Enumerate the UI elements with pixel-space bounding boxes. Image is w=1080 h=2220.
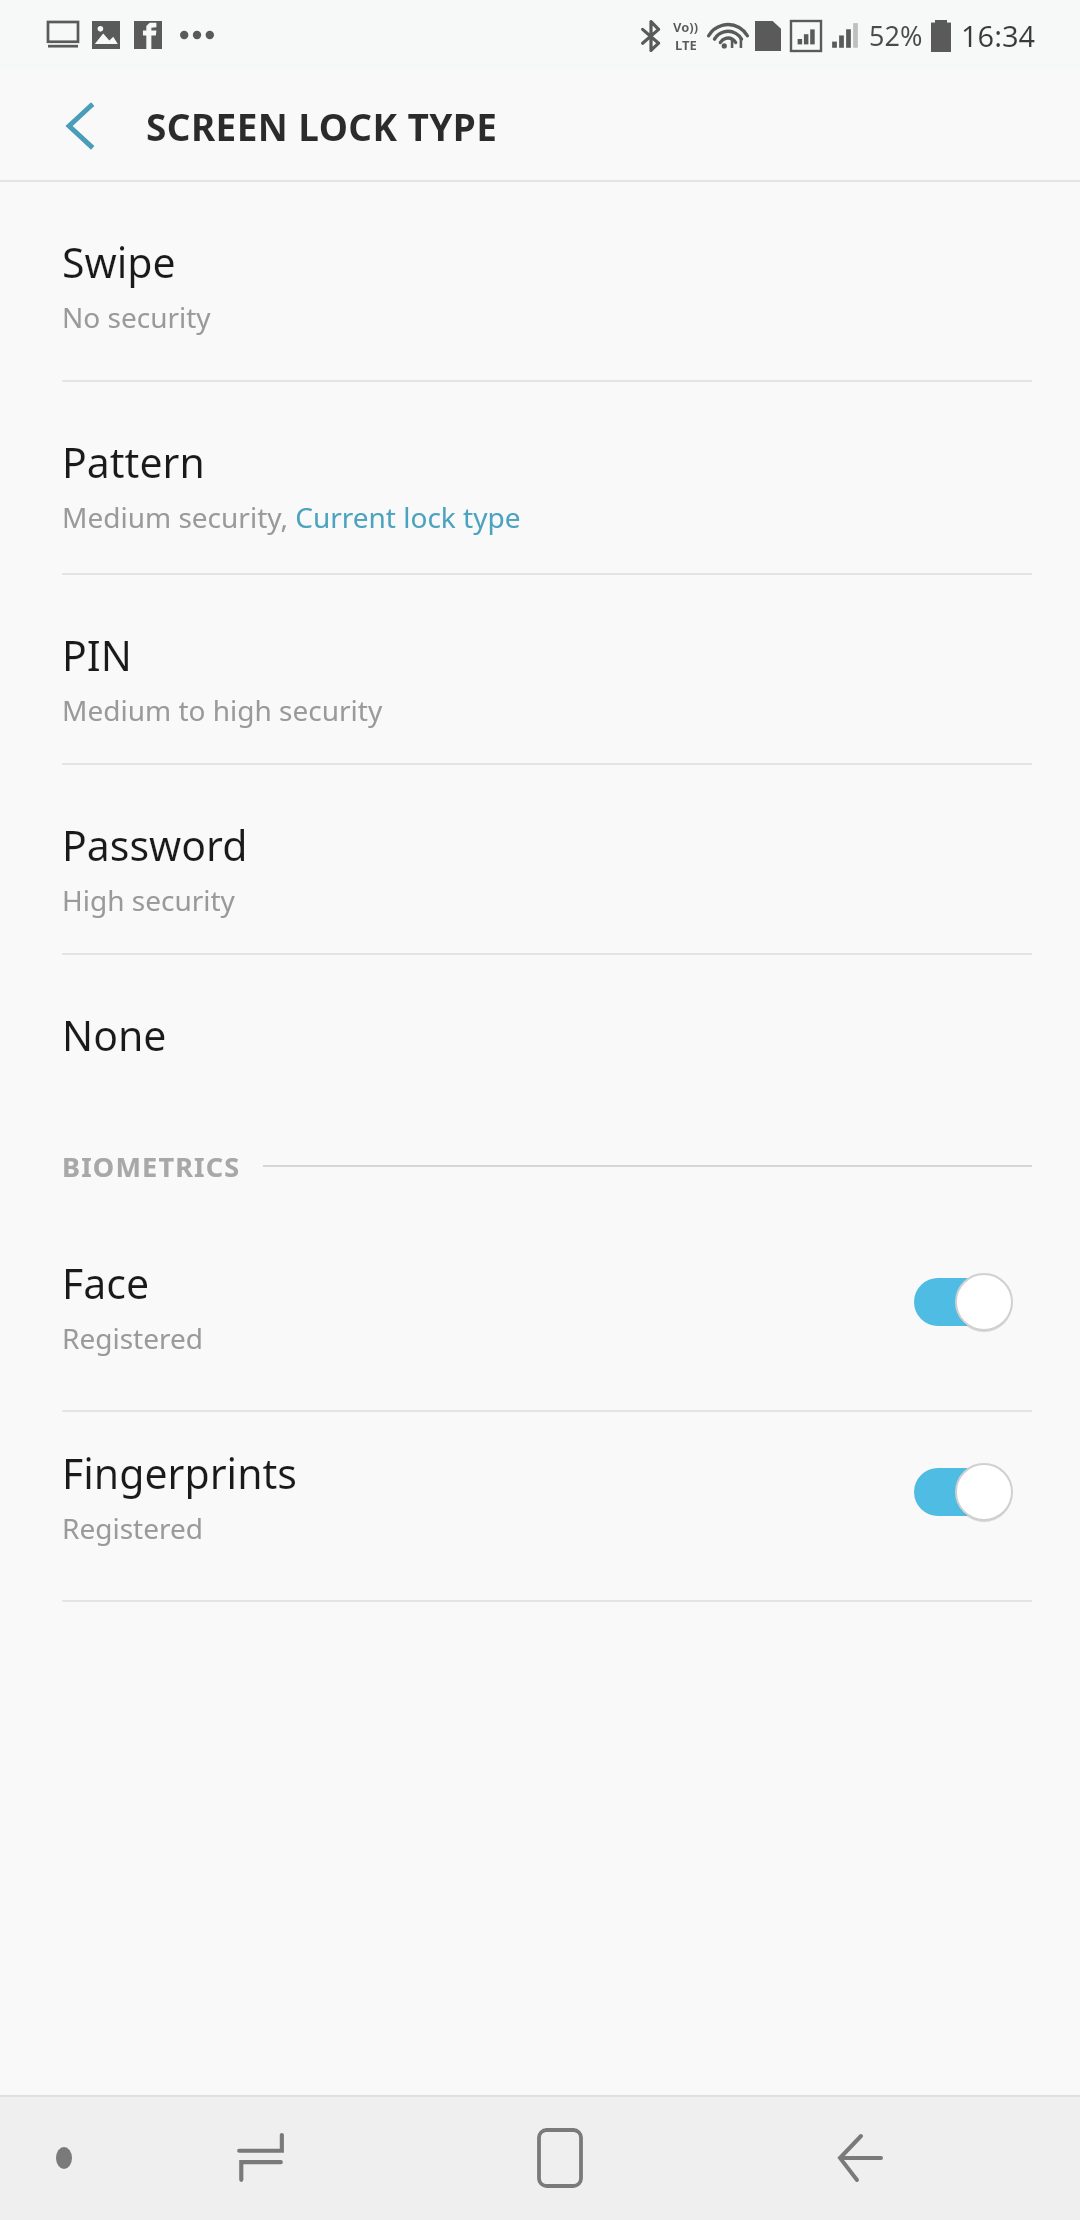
staticText: Registered <box>62 1319 203 1357</box>
staticText: Password <box>62 817 248 873</box>
button[interactable]: Back <box>710 2095 1010 2220</box>
staticText: Face <box>62 1255 150 1311</box>
staticText: No security <box>62 298 211 336</box>
staticText: 52% <box>869 17 923 54</box>
button[interactable]: Recents <box>110 2095 410 2220</box>
button[interactable]: Fingerprints toggle, on <box>914 1464 1012 1520</box>
staticText: BIOMETRICS <box>62 1148 241 1185</box>
staticText: SCREEN LOCK TYPE <box>146 101 498 151</box>
button[interactable]: Face <box>0 1222 1080 1412</box>
staticText: 16:34 <box>961 16 1036 55</box>
button[interactable]: None <box>0 955 1080 1110</box>
button[interactable]: Back <box>44 90 116 162</box>
staticText: Medium security, Current lock type <box>62 498 521 536</box>
button[interactable]: Indicator <box>52 2146 76 2170</box>
staticText: Fingerprints <box>62 1445 297 1501</box>
button[interactable]: Swipe <box>0 182 1080 382</box>
staticText: PIN <box>62 627 132 683</box>
staticText: High security <box>62 881 235 919</box>
button[interactable]: PIN <box>0 575 1080 765</box>
button[interactable]: Home <box>410 2095 710 2220</box>
staticText: Pattern <box>62 434 205 490</box>
button[interactable]: Fingerprints <box>0 1412 1080 1602</box>
staticText: LTE <box>675 36 697 54</box>
staticText: Medium to high security <box>62 691 383 729</box>
staticText: None <box>62 1007 167 1063</box>
staticText: Swipe <box>62 234 176 290</box>
button[interactable]: Password <box>0 765 1080 955</box>
button[interactable]: Face toggle, on <box>914 1274 1012 1330</box>
staticText: Registered <box>62 1509 203 1547</box>
staticText: Vo)) <box>673 18 699 36</box>
button[interactable]: Pattern <box>0 382 1080 575</box>
